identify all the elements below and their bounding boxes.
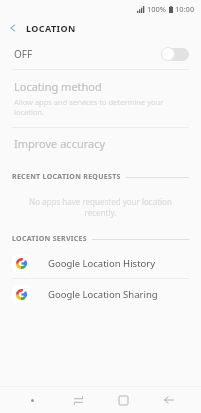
button[interactable]: OFF <box>0 39 201 69</box>
staticText: Allow apps and services to determine you… <box>14 97 187 117</box>
button[interactable]: Google Location Sharing <box>0 279 201 309</box>
button[interactable]: Switch apps <box>65 387 91 413</box>
staticText: 100% <box>147 4 167 14</box>
staticText: Google Location Sharing <box>48 288 158 301</box>
button[interactable]: Locating method <box>0 70 201 127</box>
button[interactable]: Menu indicator <box>19 387 45 413</box>
staticText: Improve accuracy <box>14 136 106 151</box>
staticText: LOCATION SERVICES <box>12 234 87 244</box>
staticText: OFF <box>14 47 33 61</box>
button[interactable]: Google Location History <box>0 248 201 278</box>
staticText: 10:00 <box>175 4 195 14</box>
button[interactable]: Back <box>0 17 26 39</box>
staticText: Google Location History <box>48 257 156 270</box>
button[interactable]: Back <box>156 387 182 413</box>
staticText: No apps have requested your location rec… <box>14 196 187 218</box>
button[interactable]: Improve accuracy <box>0 128 201 158</box>
staticText: Locating method <box>14 79 102 94</box>
staticText: LOCATION <box>26 22 76 34</box>
button[interactable]: Recent apps <box>110 387 136 413</box>
staticText: RECENT LOCATION REQUESTS <box>12 172 121 182</box>
